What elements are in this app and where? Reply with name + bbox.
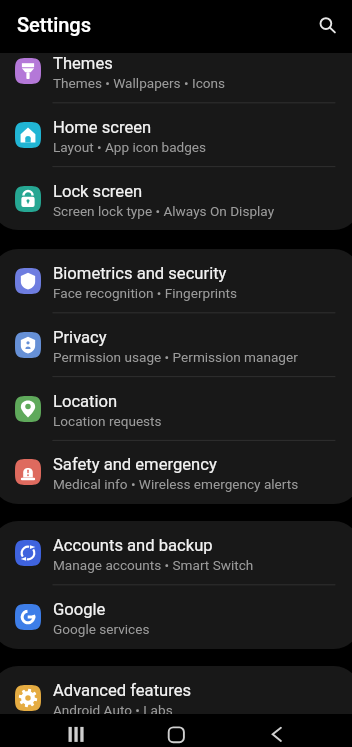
staticText: Medical info • Wireless emergency alerts [53,476,299,492]
staticText: Settings [17,13,92,36]
staticText: Layout • App icon badges [53,139,207,155]
staticText: Safety and emergency [53,455,217,474]
button[interactable]: Safety and emergency [0,440,352,504]
staticText: Face recognition • Fingerprints [53,285,238,301]
staticText: Location requests [53,413,162,429]
button[interactable]: Location [0,377,352,441]
staticText: Manage accounts • Smart Switch [53,557,254,573]
button[interactable]: Lock screen [0,167,352,231]
staticText: Biometrics and security [53,264,227,283]
button[interactable]: Recent apps [60,714,92,746]
staticText: Privacy [53,328,107,347]
button[interactable]: Home [160,714,192,746]
staticText: Advanced features [53,681,192,700]
button[interactable]: Google [0,585,352,649]
button[interactable]: Advanced features [0,666,352,714]
button[interactable]: Accounts and backup [0,521,352,585]
staticText: Themes • Wallpapers • Icons [53,75,226,91]
button[interactable]: Privacy [0,313,352,377]
staticText: Home screen [53,118,152,137]
button[interactable]: Themes [0,53,352,103]
staticText: Android Auto • Labs [53,702,173,714]
staticText: Google [53,600,106,619]
button[interactable]: Back [257,714,289,746]
staticText: Accounts and backup [53,536,213,555]
staticText: Google services [53,621,150,637]
staticText: Screen lock type • Always On Display [53,203,275,219]
staticText: Permission usage • Permission manager [53,349,298,365]
button[interactable]: Search [310,8,342,40]
button[interactable]: Biometrics and security [0,249,352,313]
staticText: Themes [53,54,113,73]
button[interactable]: Home screen [0,103,352,167]
staticText: Location [53,392,118,411]
staticText: Lock screen [53,182,143,201]
